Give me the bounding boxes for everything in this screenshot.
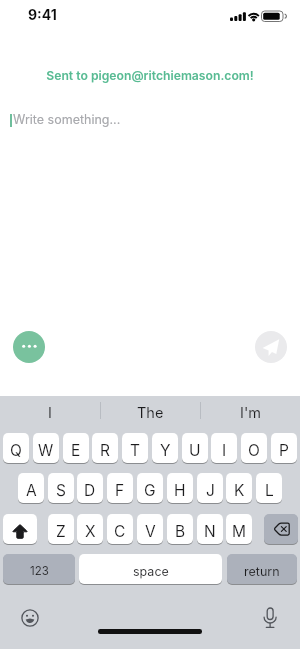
button[interactable]: P	[271, 433, 297, 463]
staticText: D	[84, 481, 96, 500]
staticText: The	[137, 404, 164, 422]
button[interactable]: L	[256, 473, 282, 503]
staticText: J	[206, 481, 215, 500]
button[interactable]: R	[92, 433, 118, 463]
staticText: W	[38, 441, 54, 460]
staticText: F	[115, 481, 125, 500]
button[interactable]: S	[48, 473, 74, 503]
button[interactable]: D	[77, 473, 103, 503]
button[interactable]: C	[107, 514, 133, 544]
staticText: Sent to pigeon@ritchiemason.com!	[46, 68, 254, 83]
button[interactable]: K	[226, 473, 252, 503]
staticText: K	[234, 481, 245, 500]
button[interactable]: Y	[152, 433, 178, 463]
staticText: P	[279, 441, 289, 460]
button[interactable]	[255, 331, 287, 363]
button[interactable]: I	[211, 433, 237, 463]
button[interactable]	[21, 609, 39, 627]
staticText: I'm	[240, 404, 261, 422]
button[interactable]: J	[197, 473, 223, 503]
button[interactable]	[13, 331, 45, 363]
button[interactable]: X	[77, 514, 103, 544]
staticText: X	[85, 522, 96, 541]
button[interactable]: U	[182, 433, 208, 463]
button[interactable]: Write something...	[13, 110, 173, 128]
button[interactable]: O	[241, 433, 267, 463]
staticText: S	[56, 481, 66, 500]
staticText: V	[145, 522, 156, 541]
button[interactable]: V	[137, 514, 163, 544]
button[interactable]: E	[63, 433, 89, 463]
button[interactable]: F	[107, 473, 133, 503]
button[interactable]: W	[33, 433, 59, 463]
button[interactable]: B	[167, 514, 193, 544]
staticText: O	[248, 441, 260, 460]
button[interactable]: Q	[3, 433, 29, 463]
staticText: I	[48, 404, 52, 422]
staticText: Y	[160, 441, 171, 460]
staticText: G	[144, 481, 156, 500]
button[interactable]: The	[100, 398, 200, 428]
button[interactable]: T	[122, 433, 148, 463]
staticText: B	[175, 522, 186, 541]
button[interactable]: 123	[3, 554, 75, 584]
button[interactable]: G	[137, 473, 163, 503]
button[interactable]: Z	[48, 514, 74, 544]
staticText: space	[133, 564, 169, 579]
button[interactable]: N	[197, 514, 223, 544]
button[interactable]	[260, 607, 280, 627]
button[interactable]: return	[227, 554, 297, 584]
staticText: I	[222, 441, 227, 460]
button[interactable]: M	[226, 514, 252, 544]
staticText: R	[100, 441, 110, 460]
staticText: 123	[30, 564, 49, 578]
button[interactable]: H	[167, 473, 193, 503]
button[interactable]: I'm	[200, 398, 300, 428]
staticText: 9:41	[28, 6, 57, 23]
staticText: Z	[56, 522, 66, 541]
staticText: A	[26, 481, 37, 500]
button[interactable]: I	[0, 398, 100, 428]
staticText: T	[130, 441, 141, 460]
staticText: E	[71, 441, 81, 460]
button[interactable]: A	[18, 473, 44, 503]
staticText: Write something...	[13, 112, 121, 127]
button[interactable]	[264, 514, 298, 544]
button[interactable]	[3, 514, 37, 544]
staticText: L	[265, 481, 274, 500]
button[interactable]: space	[79, 554, 222, 584]
staticText: N	[204, 522, 216, 541]
staticText: Q	[10, 441, 22, 460]
staticText: C	[114, 522, 126, 541]
staticText: H	[174, 481, 186, 500]
staticText: return	[244, 564, 280, 579]
staticText: M	[232, 522, 247, 541]
staticText: U	[189, 441, 201, 460]
